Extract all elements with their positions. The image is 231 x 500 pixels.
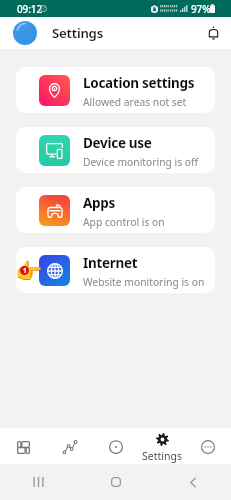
staticText: Location settings — [83, 74, 195, 92]
staticText: Internet — [83, 254, 138, 272]
button[interactable]: Activity — [47, 428, 93, 464]
staticText: 09:12 — [17, 2, 43, 16]
button[interactable]: Home — [77, 464, 154, 500]
staticText: Settings — [52, 24, 103, 42]
button[interactable]: Notifications — [200, 20, 226, 46]
staticText: App control is on — [83, 215, 165, 229]
button[interactable]: Recents — [0, 464, 77, 500]
staticText: Apps — [83, 194, 115, 212]
button[interactable]: Places — [93, 428, 139, 464]
button[interactable]: Back — [154, 464, 231, 500]
staticText: 👉 — [15, 259, 43, 285]
staticText: Settings — [142, 449, 182, 463]
staticText: Allowed areas not set — [83, 95, 187, 109]
button[interactable]: More — [185, 428, 231, 464]
staticText: 97% — [191, 2, 211, 16]
staticText: Website monitoring is on — [83, 275, 205, 289]
staticText: 1 — [23, 266, 27, 275]
button[interactable]: Location settings — [16, 67, 215, 113]
button[interactable]: Profile — [13, 21, 37, 45]
button[interactable]: Apps — [16, 187, 215, 233]
button[interactable]: Settings — [139, 428, 185, 464]
staticText: Device use — [83, 134, 152, 152]
staticText: Device monitoring is off — [83, 155, 199, 169]
button[interactable]: Dashboard — [0, 428, 47, 464]
button[interactable]: Device use — [16, 127, 215, 173]
button[interactable]: Internet — [16, 247, 215, 293]
